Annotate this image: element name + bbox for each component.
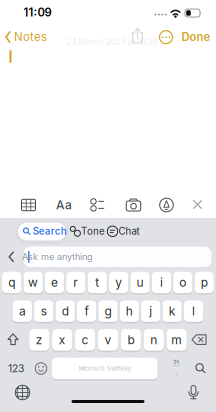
button[interactable]: s <box>34 300 53 322</box>
button[interactable] <box>14 384 30 400</box>
button[interactable]: Done <box>181 30 210 44</box>
button[interactable]: x <box>52 329 72 351</box>
staticText: f <box>85 304 89 318</box>
button[interactable]: w <box>23 272 43 293</box>
staticText: w <box>28 275 38 290</box>
button[interactable] <box>191 334 207 346</box>
button[interactable]: Ask me anything <box>23 247 211 267</box>
button[interactable]: q <box>2 272 21 293</box>
button[interactable]: Aa <box>56 198 72 212</box>
staticText: c <box>82 333 89 347</box>
staticText: ?! <box>173 358 179 367</box>
staticText: l <box>192 304 195 318</box>
staticText: h <box>126 304 133 318</box>
staticText: Notes <box>14 30 47 44</box>
staticText: g <box>104 304 111 318</box>
staticText: Tone <box>81 225 105 237</box>
staticText: Done <box>181 30 210 44</box>
staticText: Aa <box>56 198 72 212</box>
button[interactable]: b <box>121 329 141 351</box>
button[interactable]: u <box>130 272 150 293</box>
staticText: y <box>115 275 122 290</box>
staticText: 24 March 2023 at 10:36 <box>66 37 157 47</box>
button[interactable] <box>159 30 173 44</box>
staticText: Search <box>33 225 67 237</box>
staticText: z <box>36 333 43 347</box>
button[interactable]: h <box>120 300 139 322</box>
button[interactable]: Notes <box>4 29 48 45</box>
button[interactable] <box>130 27 144 44</box>
button[interactable]: n <box>144 329 164 351</box>
button[interactable] <box>89 199 105 212</box>
button[interactable]: i <box>152 272 171 293</box>
button[interactable] <box>159 197 174 212</box>
button[interactable]: g <box>98 300 118 322</box>
button[interactable] <box>34 361 48 375</box>
staticText: n <box>150 333 157 347</box>
staticText: o <box>179 275 186 290</box>
staticText: 123 <box>8 362 24 375</box>
button[interactable]: y <box>109 272 128 293</box>
button[interactable]: a <box>13 300 32 322</box>
button[interactable]: o <box>173 272 192 293</box>
button[interactable] <box>187 384 199 400</box>
staticText: d <box>62 304 69 318</box>
button[interactable]: l <box>184 300 203 322</box>
button[interactable]: t <box>88 272 107 293</box>
staticText: m <box>171 333 182 347</box>
button[interactable]: ?! <box>173 358 179 377</box>
button[interactable]: j <box>141 300 160 322</box>
staticText: 11:09 <box>23 6 51 19</box>
button[interactable] <box>6 251 16 263</box>
button[interactable] <box>6 332 20 346</box>
button[interactable]: m <box>167 329 187 351</box>
staticText: p <box>201 275 208 290</box>
button[interactable]: 123 <box>8 362 24 375</box>
staticText: x <box>59 333 66 347</box>
button[interactable] <box>20 198 36 212</box>
button[interactable]: Tone <box>69 224 103 238</box>
button[interactable]: e <box>45 272 64 293</box>
staticText: r <box>73 275 78 290</box>
staticText: u <box>136 275 143 290</box>
button[interactable] <box>125 198 141 212</box>
staticText: Ask me anything <box>22 251 93 262</box>
staticText: q <box>8 275 15 290</box>
button[interactable]: f <box>77 300 96 322</box>
staticText: Chat <box>118 225 139 237</box>
staticText: s <box>41 304 47 318</box>
staticText: i <box>160 275 163 290</box>
staticText: e <box>51 275 58 290</box>
button[interactable]: r <box>66 272 85 293</box>
button[interactable]: v <box>98 329 118 351</box>
staticText: k <box>169 304 176 318</box>
staticText: a <box>19 304 26 318</box>
staticText: t <box>95 275 99 290</box>
button[interactable]: k <box>162 300 182 322</box>
button[interactable]: Search <box>18 222 66 240</box>
staticText: . <box>175 367 177 376</box>
staticText: b <box>127 333 134 347</box>
button[interactable]: z <box>29 329 49 351</box>
button[interactable] <box>192 361 208 377</box>
button[interactable]: p <box>195 272 214 293</box>
staticText: j <box>149 304 152 318</box>
button[interactable]: Chat <box>106 224 136 238</box>
button[interactable]: Microsoft SwiftKey <box>52 358 157 379</box>
staticText: Microsoft SwiftKey <box>79 365 131 372</box>
staticText: v <box>104 333 111 347</box>
button[interactable]: d <box>56 300 75 322</box>
button[interactable] <box>191 198 203 210</box>
button[interactable]: c <box>75 329 95 351</box>
